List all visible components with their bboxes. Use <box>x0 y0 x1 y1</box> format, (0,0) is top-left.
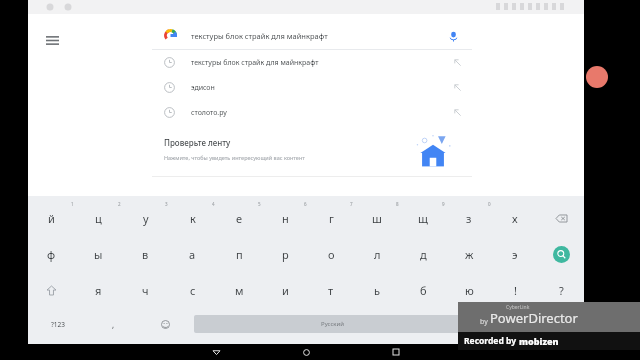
button[interactable]: т <box>308 272 354 308</box>
button[interactable]: ь <box>354 272 400 308</box>
staticText: ф <box>47 247 56 262</box>
button[interactable]: р <box>262 236 308 272</box>
staticText: ! <box>514 283 517 298</box>
staticText: с <box>190 283 196 298</box>
staticText: в <box>142 247 149 262</box>
button[interactable]: у <box>122 200 169 236</box>
button[interactable]: столото.ру <box>152 100 472 125</box>
staticText: ю <box>465 283 474 298</box>
staticText: ?123 <box>51 320 65 329</box>
button[interactable]: г <box>308 200 354 236</box>
staticText: 4 <box>212 201 215 207</box>
button[interactable]: ?123 <box>28 308 87 340</box>
staticText: н <box>282 211 289 226</box>
button[interactable]: а <box>169 236 216 272</box>
staticText: у <box>143 211 149 226</box>
button[interactable]: эдисон <box>152 75 472 100</box>
button[interactable]: текстуры блок страйк для майнкрафт <box>152 50 472 75</box>
button[interactable]: Emoji <box>139 308 191 340</box>
staticText: mobizen <box>519 335 559 347</box>
staticText: ы <box>94 247 103 262</box>
button[interactable]: й <box>28 200 75 236</box>
button[interactable]: н <box>262 200 308 236</box>
button[interactable]: м <box>216 272 262 308</box>
button[interactable]: и <box>262 272 308 308</box>
staticText: к <box>190 211 196 226</box>
staticText: и <box>282 283 289 298</box>
button[interactable]: о <box>308 236 354 272</box>
button[interactable]: Backspace <box>538 200 584 236</box>
staticText: 2 <box>118 201 121 207</box>
button[interactable]: ы <box>75 236 122 272</box>
staticText: PowerDirector <box>490 309 578 327</box>
button[interactable]: ц <box>75 200 122 236</box>
button[interactable]: ч <box>122 272 169 308</box>
button[interactable]: Voice search <box>442 25 464 47</box>
button[interactable]: Home <box>261 344 351 360</box>
staticText: р <box>282 247 289 262</box>
staticText: 9 <box>442 201 445 207</box>
staticText: ь <box>374 283 380 298</box>
staticText: а <box>189 247 196 262</box>
button[interactable]: Emoji sticker <box>474 308 526 340</box>
button[interactable]: е <box>216 200 262 236</box>
button[interactable]: ю <box>446 272 492 308</box>
staticText: й <box>48 211 55 226</box>
button[interactable]: ж <box>446 236 492 272</box>
button[interactable]: Back <box>171 344 261 360</box>
staticText: э <box>512 247 518 262</box>
staticText: ц <box>95 211 102 226</box>
staticText: столото.ру <box>191 108 227 118</box>
button[interactable]: Русский <box>194 315 471 333</box>
button[interactable]: щ <box>400 200 446 236</box>
button[interactable]: б <box>400 272 446 308</box>
staticText: CyberLink <box>506 304 530 311</box>
staticText: Русский <box>321 320 344 328</box>
staticText: м <box>235 283 244 298</box>
staticText: 5 <box>258 201 261 207</box>
button[interactable]: л <box>354 236 400 272</box>
button[interactable]: ! <box>492 272 538 308</box>
button[interactable]: Menu <box>38 26 66 54</box>
staticText: 8 <box>396 201 399 207</box>
button[interactable]: Shift <box>28 272 75 308</box>
button[interactable]: текстуры блок страйк для майнкрафт <box>152 22 472 49</box>
button[interactable]: с <box>169 272 216 308</box>
staticText: 6 <box>304 201 307 207</box>
staticText: эдисон <box>191 83 215 93</box>
button[interactable]: ф <box>28 236 75 272</box>
button[interactable]: Recents <box>351 344 441 360</box>
staticText: , <box>112 319 115 330</box>
staticText: з <box>466 211 472 226</box>
staticText: Проверьте ленту <box>164 137 231 148</box>
staticText: д <box>420 247 427 262</box>
staticText: ж <box>465 247 474 262</box>
button[interactable]: э <box>492 236 538 272</box>
button[interactable]: к <box>169 200 216 236</box>
staticText: т <box>328 283 334 298</box>
staticText: о <box>328 247 335 262</box>
button[interactable]: х <box>492 200 538 236</box>
staticText: Recorded by <box>464 335 519 347</box>
staticText: ч <box>142 283 149 298</box>
staticText: п <box>236 247 243 262</box>
button[interactable]: я <box>75 272 122 308</box>
button[interactable]: в <box>122 236 169 272</box>
button[interactable]: ш <box>354 200 400 236</box>
button[interactable]: д <box>400 236 446 272</box>
staticText: 3 <box>165 201 168 207</box>
button[interactable]: з <box>446 200 492 236</box>
staticText: е <box>236 211 243 226</box>
staticText: б <box>420 283 427 298</box>
button[interactable]: п <box>216 236 262 272</box>
button[interactable]: Search <box>538 236 584 272</box>
button[interactable]: ? <box>538 272 584 308</box>
staticText: г <box>329 211 334 226</box>
staticText: 7 <box>350 201 353 207</box>
button[interactable]: ?123 <box>526 308 584 340</box>
staticText: 1 <box>71 201 74 207</box>
button[interactable]: Проверьте ленту <box>152 128 472 176</box>
staticText: 0 <box>488 201 491 207</box>
staticText: текстуры блок страйк для майнкрафт <box>191 58 319 68</box>
